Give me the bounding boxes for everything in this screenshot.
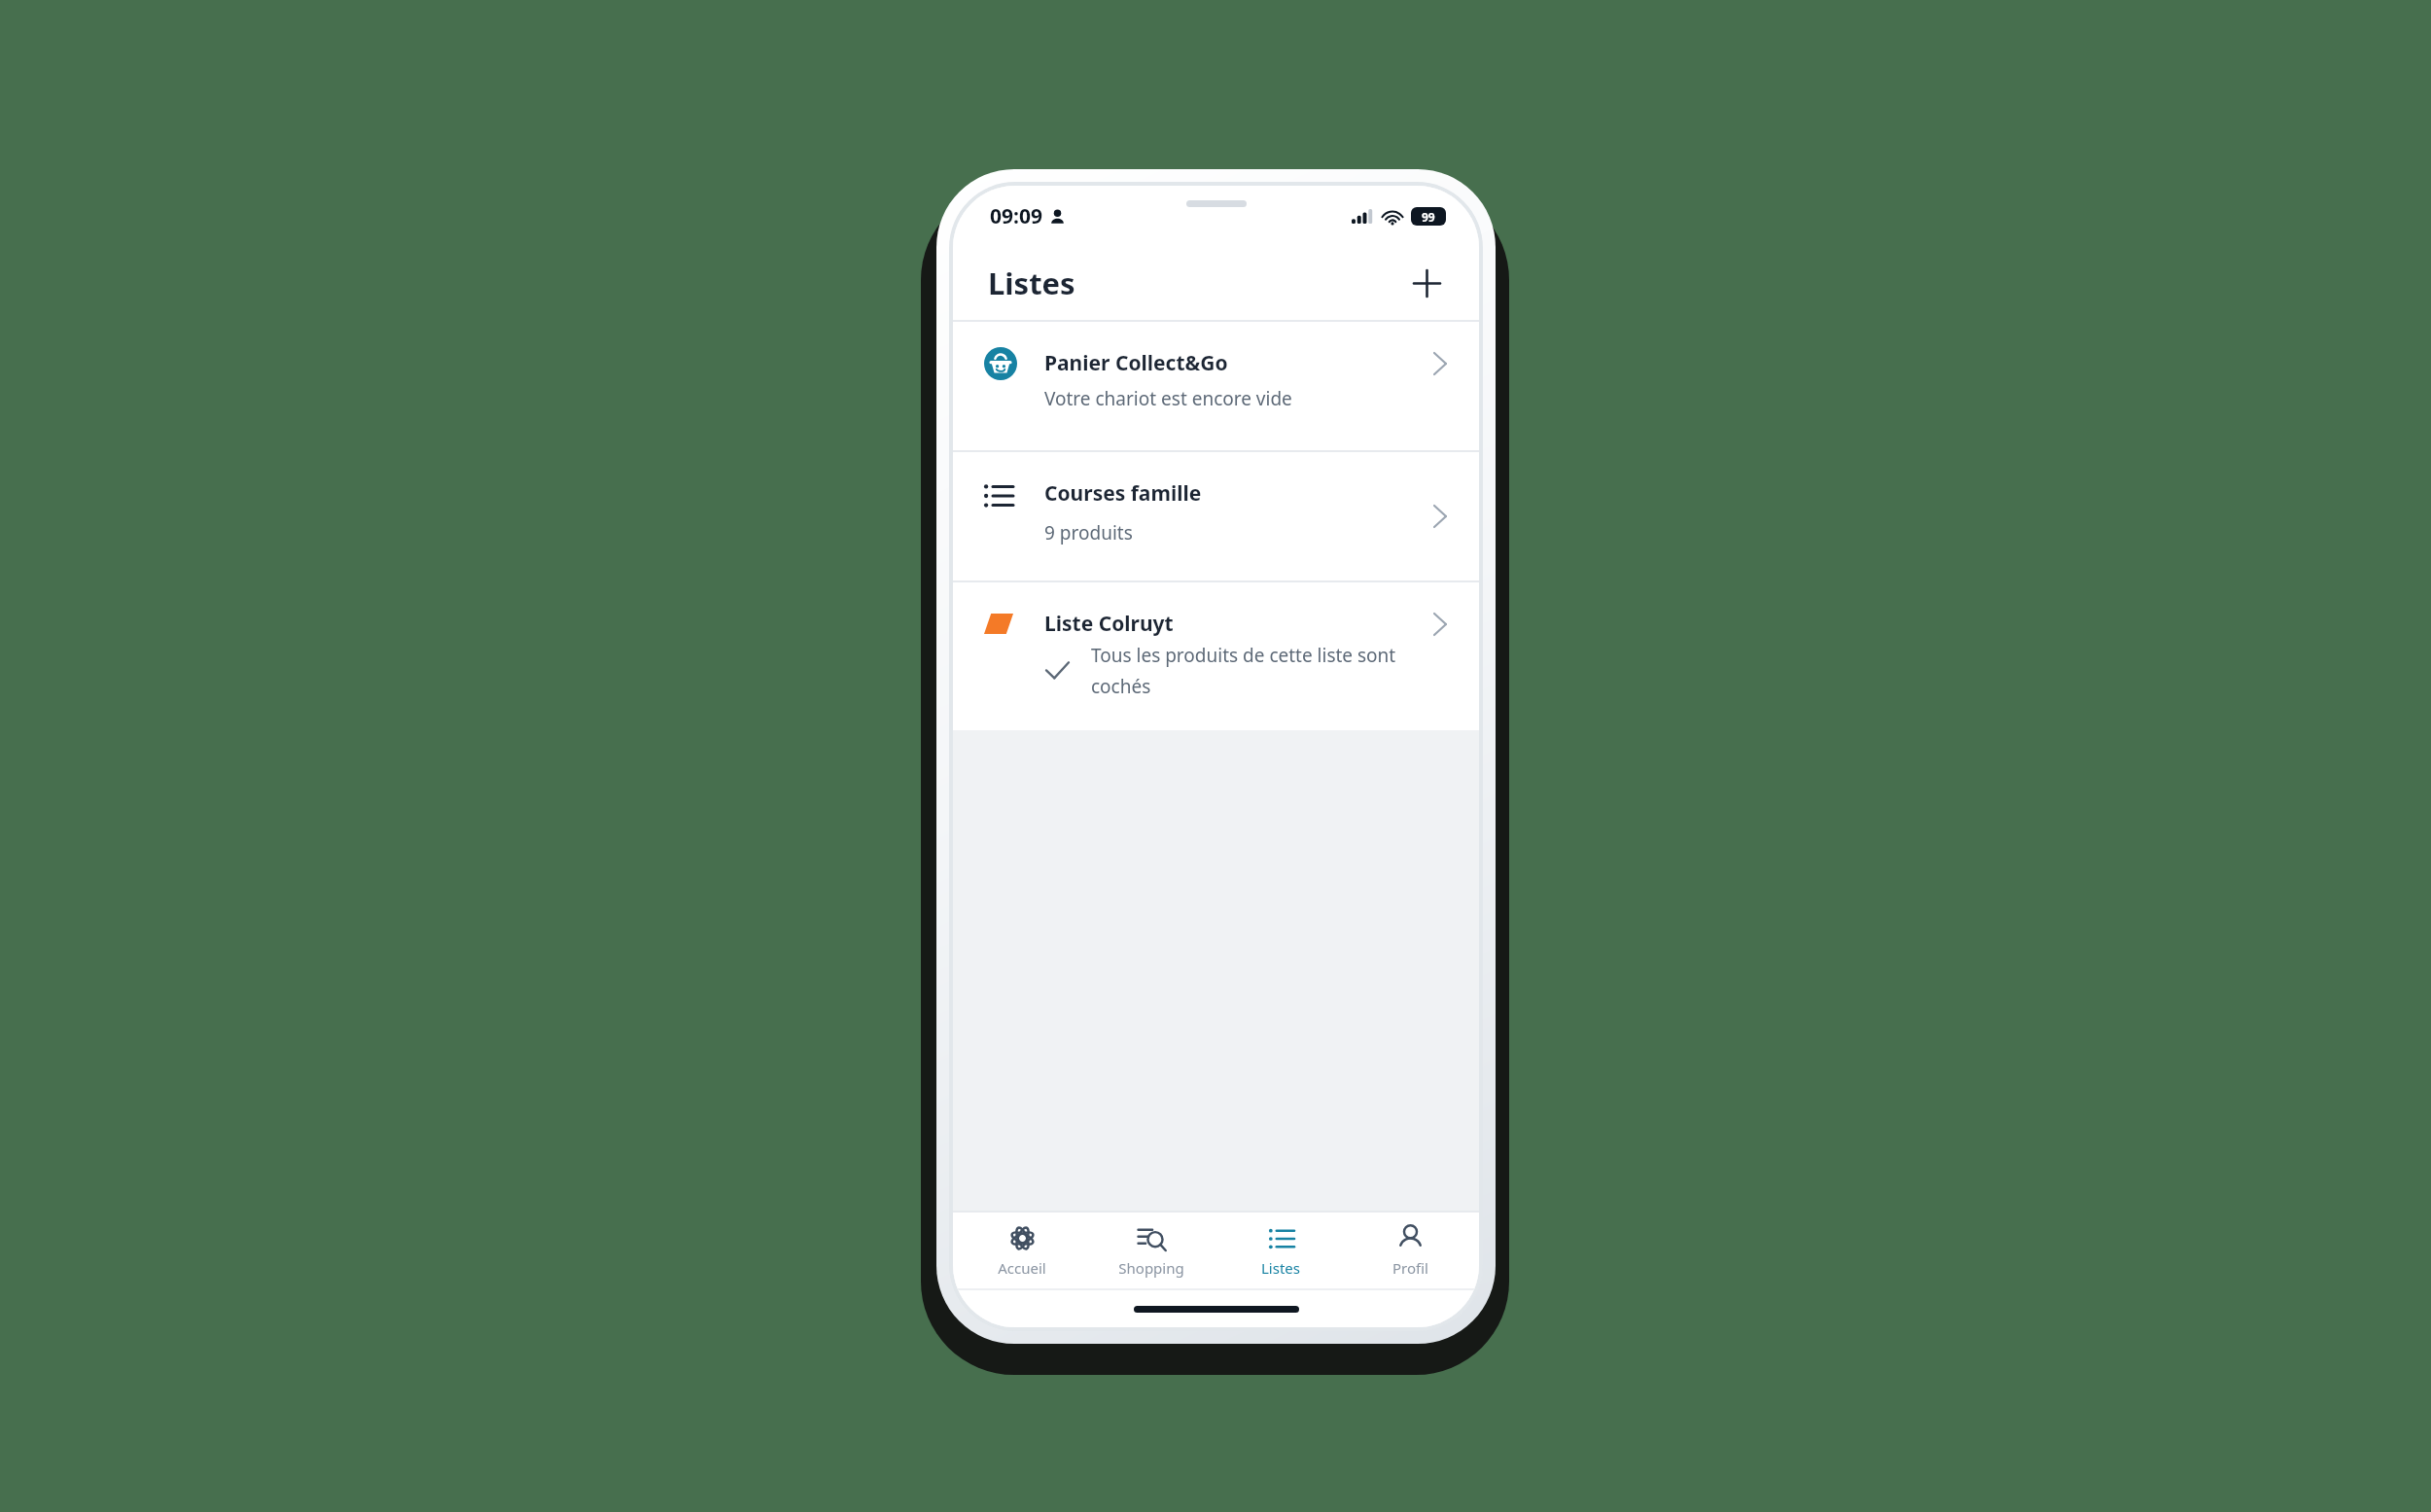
button[interactable]: Liste Colruyt: [953, 582, 1479, 730]
staticText: 99: [1422, 209, 1435, 225]
staticText: 9 produits: [1044, 520, 1133, 545]
staticText: Profil: [1392, 1258, 1428, 1278]
staticText: cochés: [1091, 674, 1151, 699]
button[interactable]: Shopping: [1091, 1213, 1212, 1288]
staticText: Shopping: [1118, 1258, 1184, 1278]
button[interactable]: Ajouter une liste: [1399, 256, 1454, 310]
button[interactable]: Courses famille: [953, 452, 1479, 580]
staticText: Tous les produits de cette liste sont: [1091, 643, 1396, 668]
staticText: Panier Collect&Go: [1044, 349, 1228, 377]
staticText: Courses famille: [1044, 479, 1202, 508]
button[interactable]: Profil: [1350, 1213, 1470, 1288]
button[interactable]: Accueil: [962, 1213, 1082, 1288]
staticText: Listes: [988, 263, 1075, 303]
button[interactable]: Listes: [1220, 1213, 1341, 1288]
staticText: Accueil: [998, 1258, 1046, 1278]
button[interactable]: Panier Collect&Go: [953, 322, 1479, 450]
staticText: Listes: [1261, 1258, 1300, 1278]
staticText: Votre chariot est encore vide: [1044, 386, 1292, 411]
staticText: Liste Colruyt: [1044, 610, 1174, 638]
staticText: 09:09: [990, 202, 1042, 230]
